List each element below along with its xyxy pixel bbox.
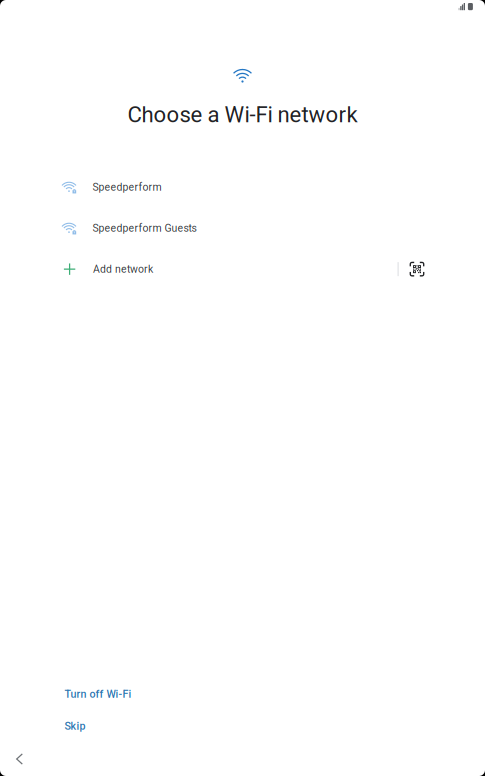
button[interactable]: Skip (0, 710, 485, 742)
staticText: Add network (93, 263, 153, 275)
staticText: Speedperform Guests (92, 222, 196, 234)
button[interactable]: Turn off Wi-Fi (0, 678, 485, 710)
staticText: Turn off Wi-Fi (64, 688, 131, 700)
button[interactable]: Speedperform (0, 167, 485, 208)
button[interactable]: Add network (0, 249, 398, 290)
staticText: Speedperform (92, 181, 161, 193)
staticText: Choose a Wi-Fi network (127, 102, 357, 128)
button[interactable]: Back (0, 742, 485, 776)
button[interactable]: Scan QR code (399, 249, 485, 290)
button[interactable]: Speedperform Guests (0, 208, 485, 249)
staticText: Skip (64, 720, 85, 732)
